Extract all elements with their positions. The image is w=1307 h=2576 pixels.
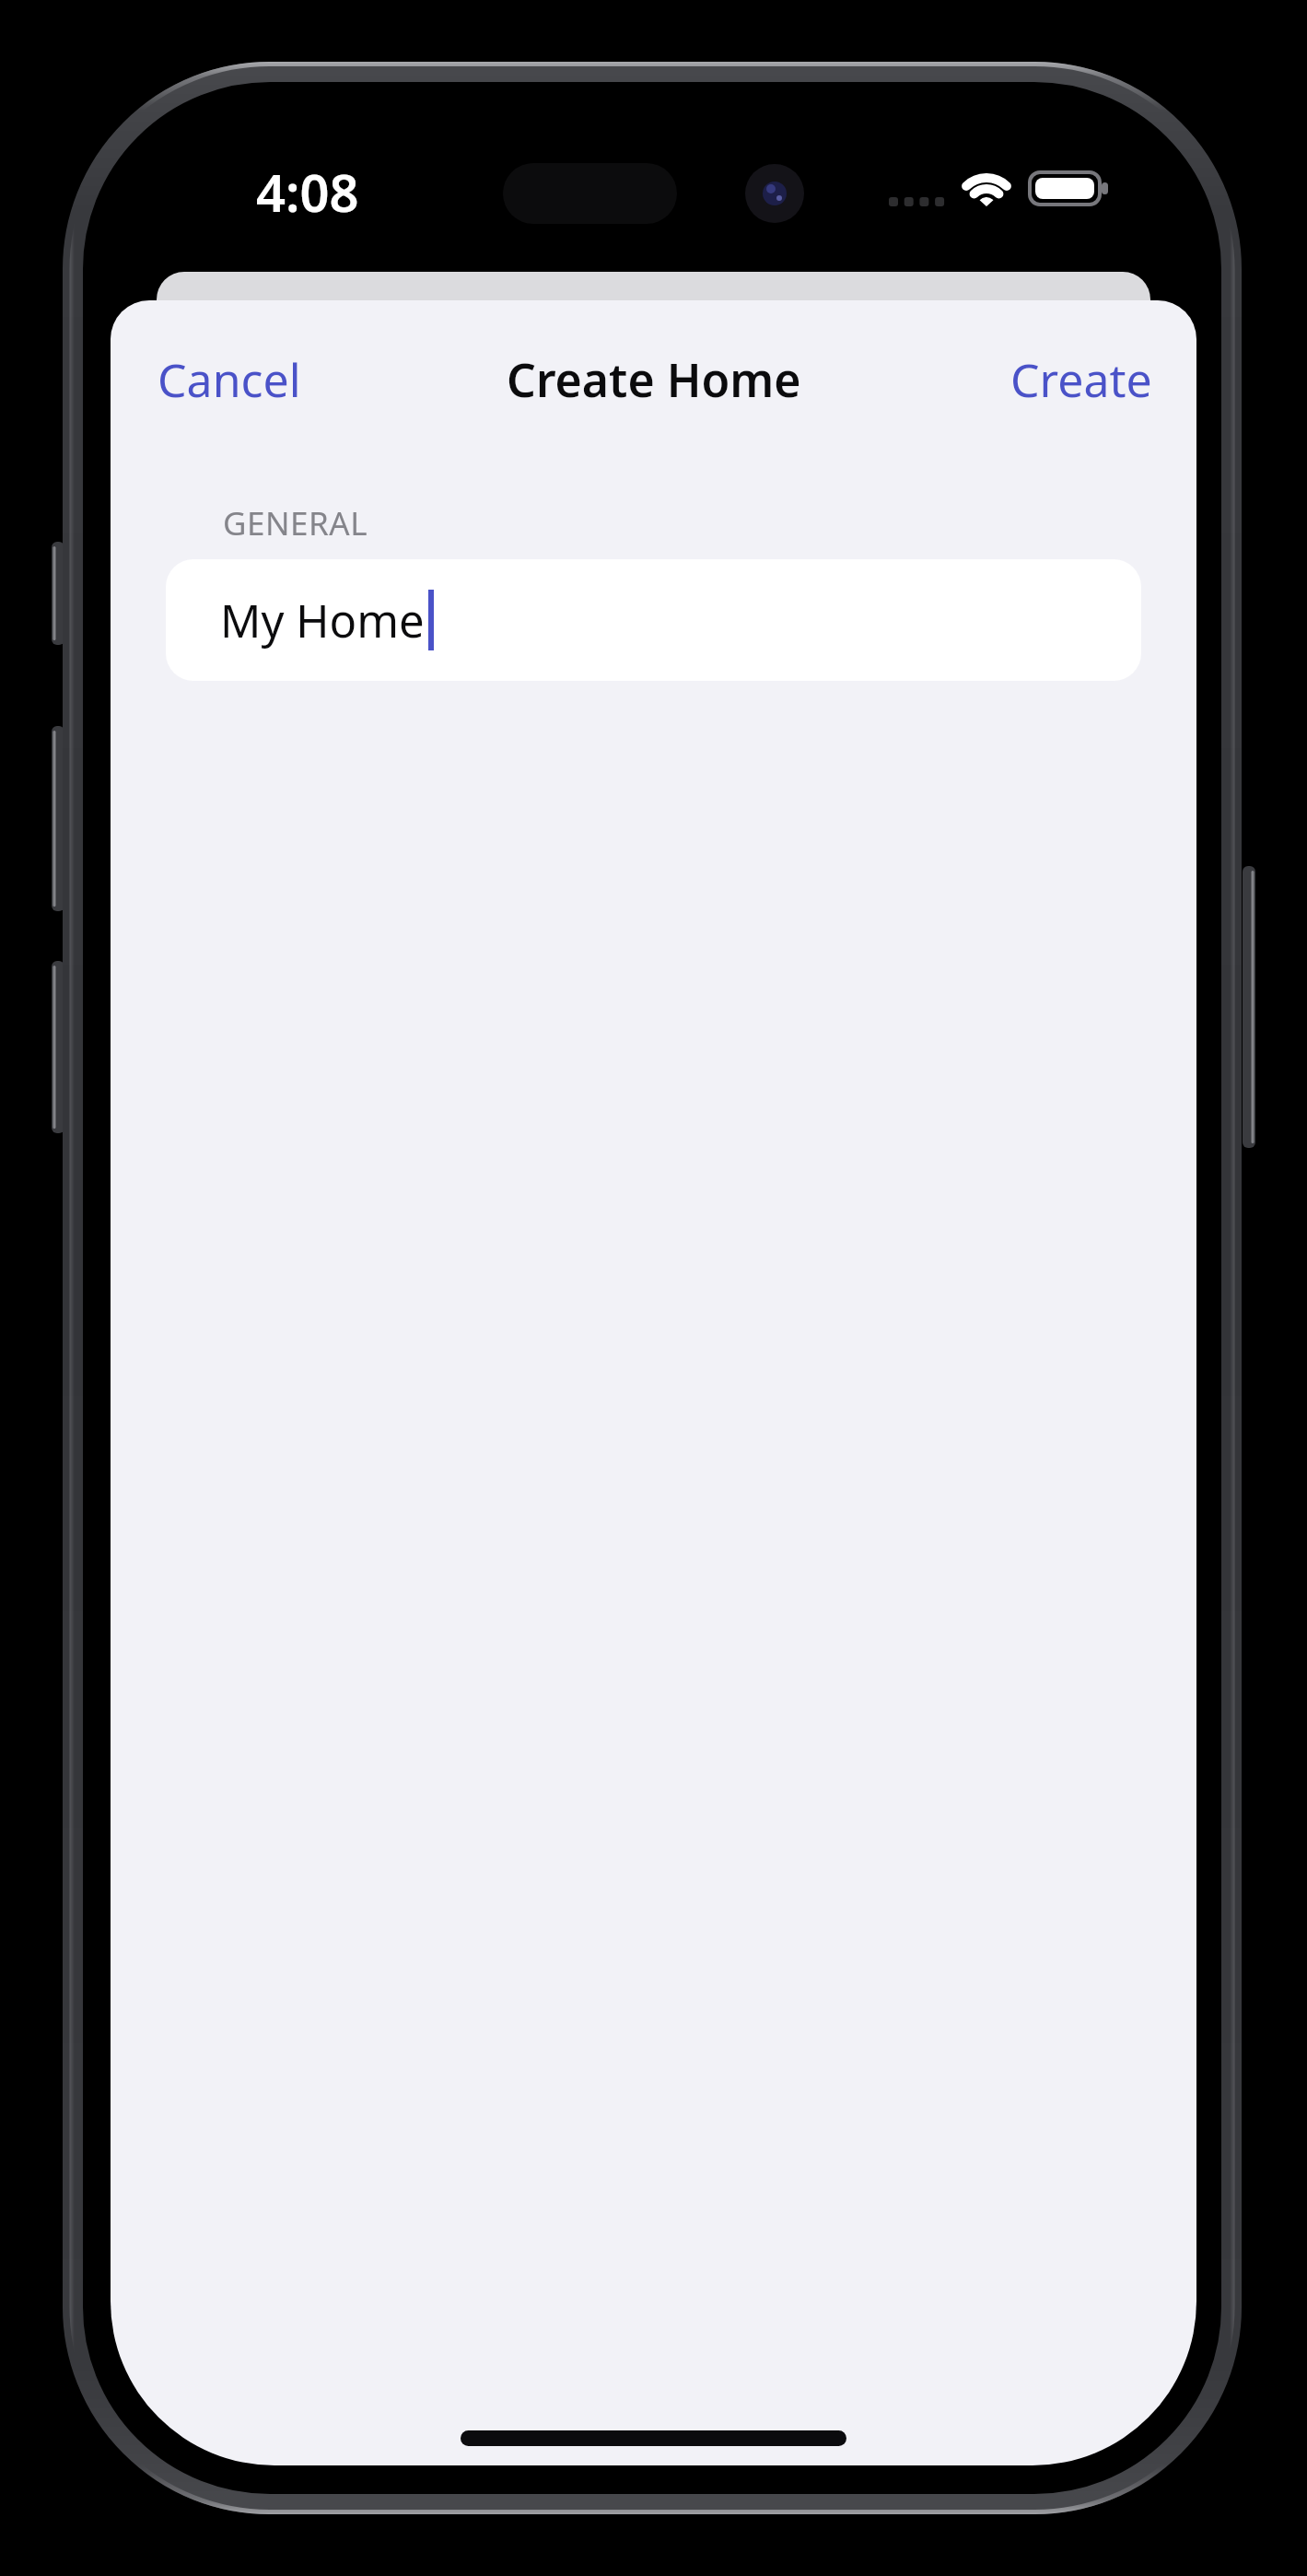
staticText: My Home	[220, 590, 425, 651]
staticText: 4:08	[256, 157, 359, 225]
staticText: Cancel	[158, 348, 301, 411]
staticText: Create Home	[507, 348, 801, 411]
staticText: GENERAL	[223, 501, 368, 545]
staticText: Create	[1010, 348, 1152, 411]
